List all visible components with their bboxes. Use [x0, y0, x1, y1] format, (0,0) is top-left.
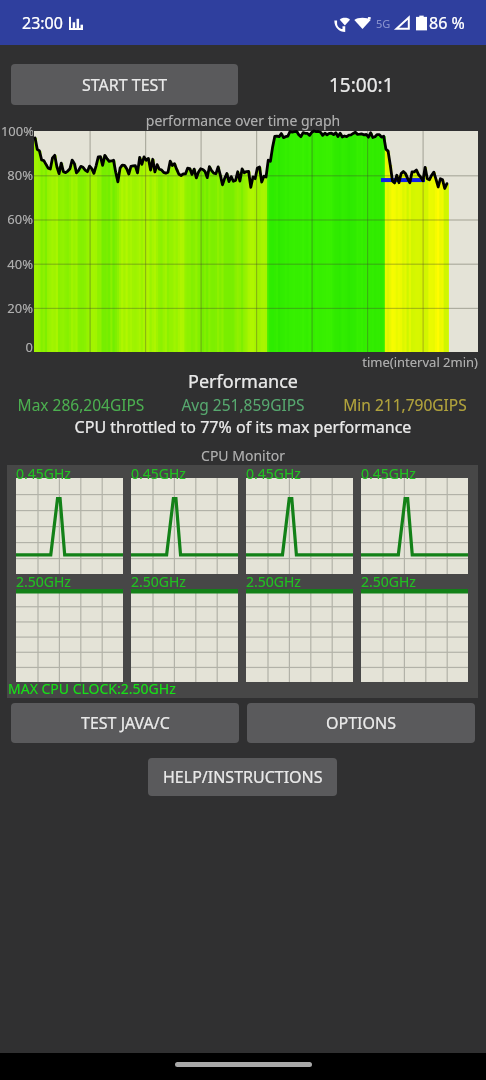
other: Home: [175, 1062, 312, 1067]
other: Calls over Wi-Fi: [334, 14, 351, 32]
staticText: 0.45GHz: [16, 464, 71, 483]
staticText: OPTIONS: [326, 712, 396, 734]
staticText: 100%: [0, 122, 33, 140]
staticText: 86 %: [429, 12, 465, 34]
staticText: TEST JAVA/C: [81, 712, 170, 734]
staticText: 60%: [0, 210, 33, 228]
button[interactable]: HELP/INSTRUCTIONS: [148, 758, 337, 796]
staticText: 80%: [0, 166, 33, 184]
staticText: 2.50GHz: [16, 572, 71, 591]
staticText: CPU Monitor: [0, 446, 486, 465]
staticText: 2.50GHz: [131, 572, 186, 591]
staticText: Max 286,204GIPS: [0, 394, 162, 415]
staticText: performance over time graph: [0, 111, 486, 130]
other: Battery: [416, 14, 427, 32]
staticText: 2.50GHz: [361, 572, 416, 591]
button[interactable]: START TEST: [11, 64, 238, 105]
staticText: 0.45GHz: [131, 464, 186, 483]
staticText: 0: [0, 338, 33, 356]
other: Wi-Fi: [354, 14, 371, 32]
staticText: HELP/INSTRUCTIONS: [163, 766, 323, 788]
button[interactable]: OPTIONS: [247, 703, 475, 743]
staticText: MAX CPU CLOCK:2.50GHz: [8, 679, 176, 698]
staticText: 5G: [376, 16, 391, 31]
staticText: 0.45GHz: [361, 464, 416, 483]
staticText: 20%: [0, 299, 33, 317]
staticText: 2.50GHz: [246, 572, 301, 591]
staticText: Min 211,790GIPS: [324, 394, 486, 415]
other: Mobile signal: [395, 14, 410, 32]
staticText: Avg 251,859GIPS: [162, 394, 324, 415]
staticText: START TEST: [82, 74, 168, 96]
staticText: 23:00: [22, 12, 63, 34]
staticText: CPU throttled to 77% of its max performa…: [0, 416, 486, 438]
staticText: 0.45GHz: [246, 464, 301, 483]
button[interactable]: TEST JAVA/C: [11, 703, 239, 743]
staticText: Performance: [0, 369, 486, 394]
staticText: 40%: [0, 255, 33, 273]
staticText: time(interval 2min): [0, 353, 478, 371]
staticText: 15:00:1: [329, 72, 394, 98]
